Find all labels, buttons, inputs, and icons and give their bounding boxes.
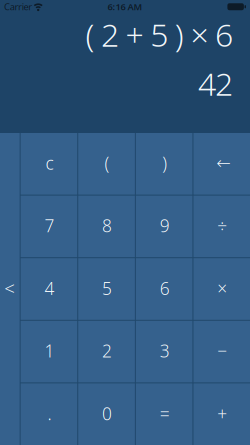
staticText: × [217,277,227,300]
staticText: 9 [160,214,170,237]
button[interactable]: c [21,133,77,195]
button[interactable]: − [193,321,250,382]
button[interactable]: + [193,383,250,445]
staticText: ) [162,151,167,174]
staticText: ÷ [217,214,227,237]
button[interactable]: 6 [136,258,192,320]
button[interactable]: 4 [21,258,77,320]
button[interactable]: ) [136,133,192,195]
staticText: 8 [102,214,112,237]
staticText: 42 [198,62,233,104]
staticText: < [4,276,15,300]
staticText: 6:16 AM [107,1,142,13]
button[interactable]: × [193,258,250,320]
button[interactable]: 5 [78,258,135,320]
staticText: 5 [102,277,112,300]
button[interactable]: = [136,383,192,445]
button[interactable]: 9 [136,196,192,257]
staticText: ( [104,151,109,174]
staticText: = [160,402,170,425]
button[interactable]: . [21,383,77,445]
button[interactable]: Backspace [193,133,250,195]
button[interactable]: 3 [136,321,192,382]
staticText: . [47,402,51,425]
staticText: 1 [44,339,54,362]
staticText: Carrier [4,1,32,13]
button[interactable]: ( [78,133,135,195]
staticText: ← [216,153,231,173]
staticText: 3 [160,339,170,362]
staticText: + [217,402,227,425]
staticText: 7 [44,214,54,237]
staticText: ( 2 + 5 ) × 6 [85,13,233,55]
staticText: − [217,339,227,362]
staticText: 6 [160,277,170,300]
button[interactable]: 7 [21,196,77,257]
button[interactable]: ÷ [193,196,250,257]
button[interactable]: More functions [0,133,20,445]
staticText: c [45,151,53,174]
button[interactable]: 0 [78,383,135,445]
button[interactable]: 2 [78,321,135,382]
staticText: 4 [44,277,54,300]
button[interactable]: 8 [78,196,135,257]
staticText: 2 [102,339,112,362]
button[interactable]: 1 [21,321,77,382]
staticText: 0 [102,402,112,425]
